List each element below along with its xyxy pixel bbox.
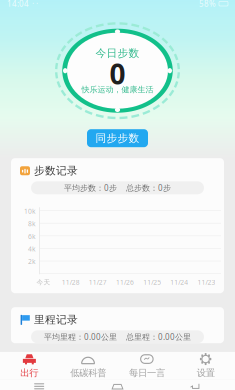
button[interactable]: 每日一言 xyxy=(117,353,176,379)
staticText: 11/26 xyxy=(116,278,134,287)
button[interactable]: Home xyxy=(78,380,157,390)
staticText: 0 xyxy=(109,55,125,92)
staticText: 总里程：0.00公里 xyxy=(126,331,191,342)
button[interactable]: Back xyxy=(157,380,235,390)
staticText: 低碳科普 xyxy=(70,367,106,379)
button[interactable]: 设置 xyxy=(176,353,235,379)
staticText: 出行 xyxy=(20,367,38,379)
staticText: 平均里程：0.00公里 xyxy=(44,331,117,342)
staticText: 步数记录 xyxy=(34,164,78,177)
staticText: 4k xyxy=(28,244,36,253)
button[interactable]: 出行 xyxy=(0,353,59,379)
button[interactable]: 低碳科普 xyxy=(59,353,117,379)
staticText: 每日一言 xyxy=(129,367,165,379)
staticText: 14:04 xyxy=(7,0,29,9)
staticText: 里程记录 xyxy=(34,313,78,326)
staticText: 11/24 xyxy=(170,278,188,287)
staticText: 11/23 xyxy=(197,278,215,287)
staticText: 同步步数 xyxy=(95,132,139,145)
staticText: 11/25 xyxy=(143,278,161,287)
staticText: 11/27 xyxy=(89,278,107,287)
button[interactable]: 同步步数 xyxy=(87,129,148,147)
staticText: 今日步数 xyxy=(95,47,139,60)
staticText: 今天 xyxy=(37,278,51,286)
staticText: 6k xyxy=(28,232,36,241)
staticText: 11/28 xyxy=(62,278,80,287)
staticText: 总步数：0步 xyxy=(126,182,171,193)
staticText: 设置 xyxy=(197,367,215,379)
staticText: 快乐运动，健康生活 xyxy=(81,85,153,95)
staticText: · · xyxy=(32,0,38,9)
staticText: 8k xyxy=(28,219,36,228)
staticText: 平均步数：0步 xyxy=(64,182,117,193)
button[interactable]: Recents xyxy=(0,380,78,390)
staticText: 2k xyxy=(28,257,36,266)
staticText: 58% xyxy=(199,0,216,9)
staticText: 10k xyxy=(24,207,36,216)
